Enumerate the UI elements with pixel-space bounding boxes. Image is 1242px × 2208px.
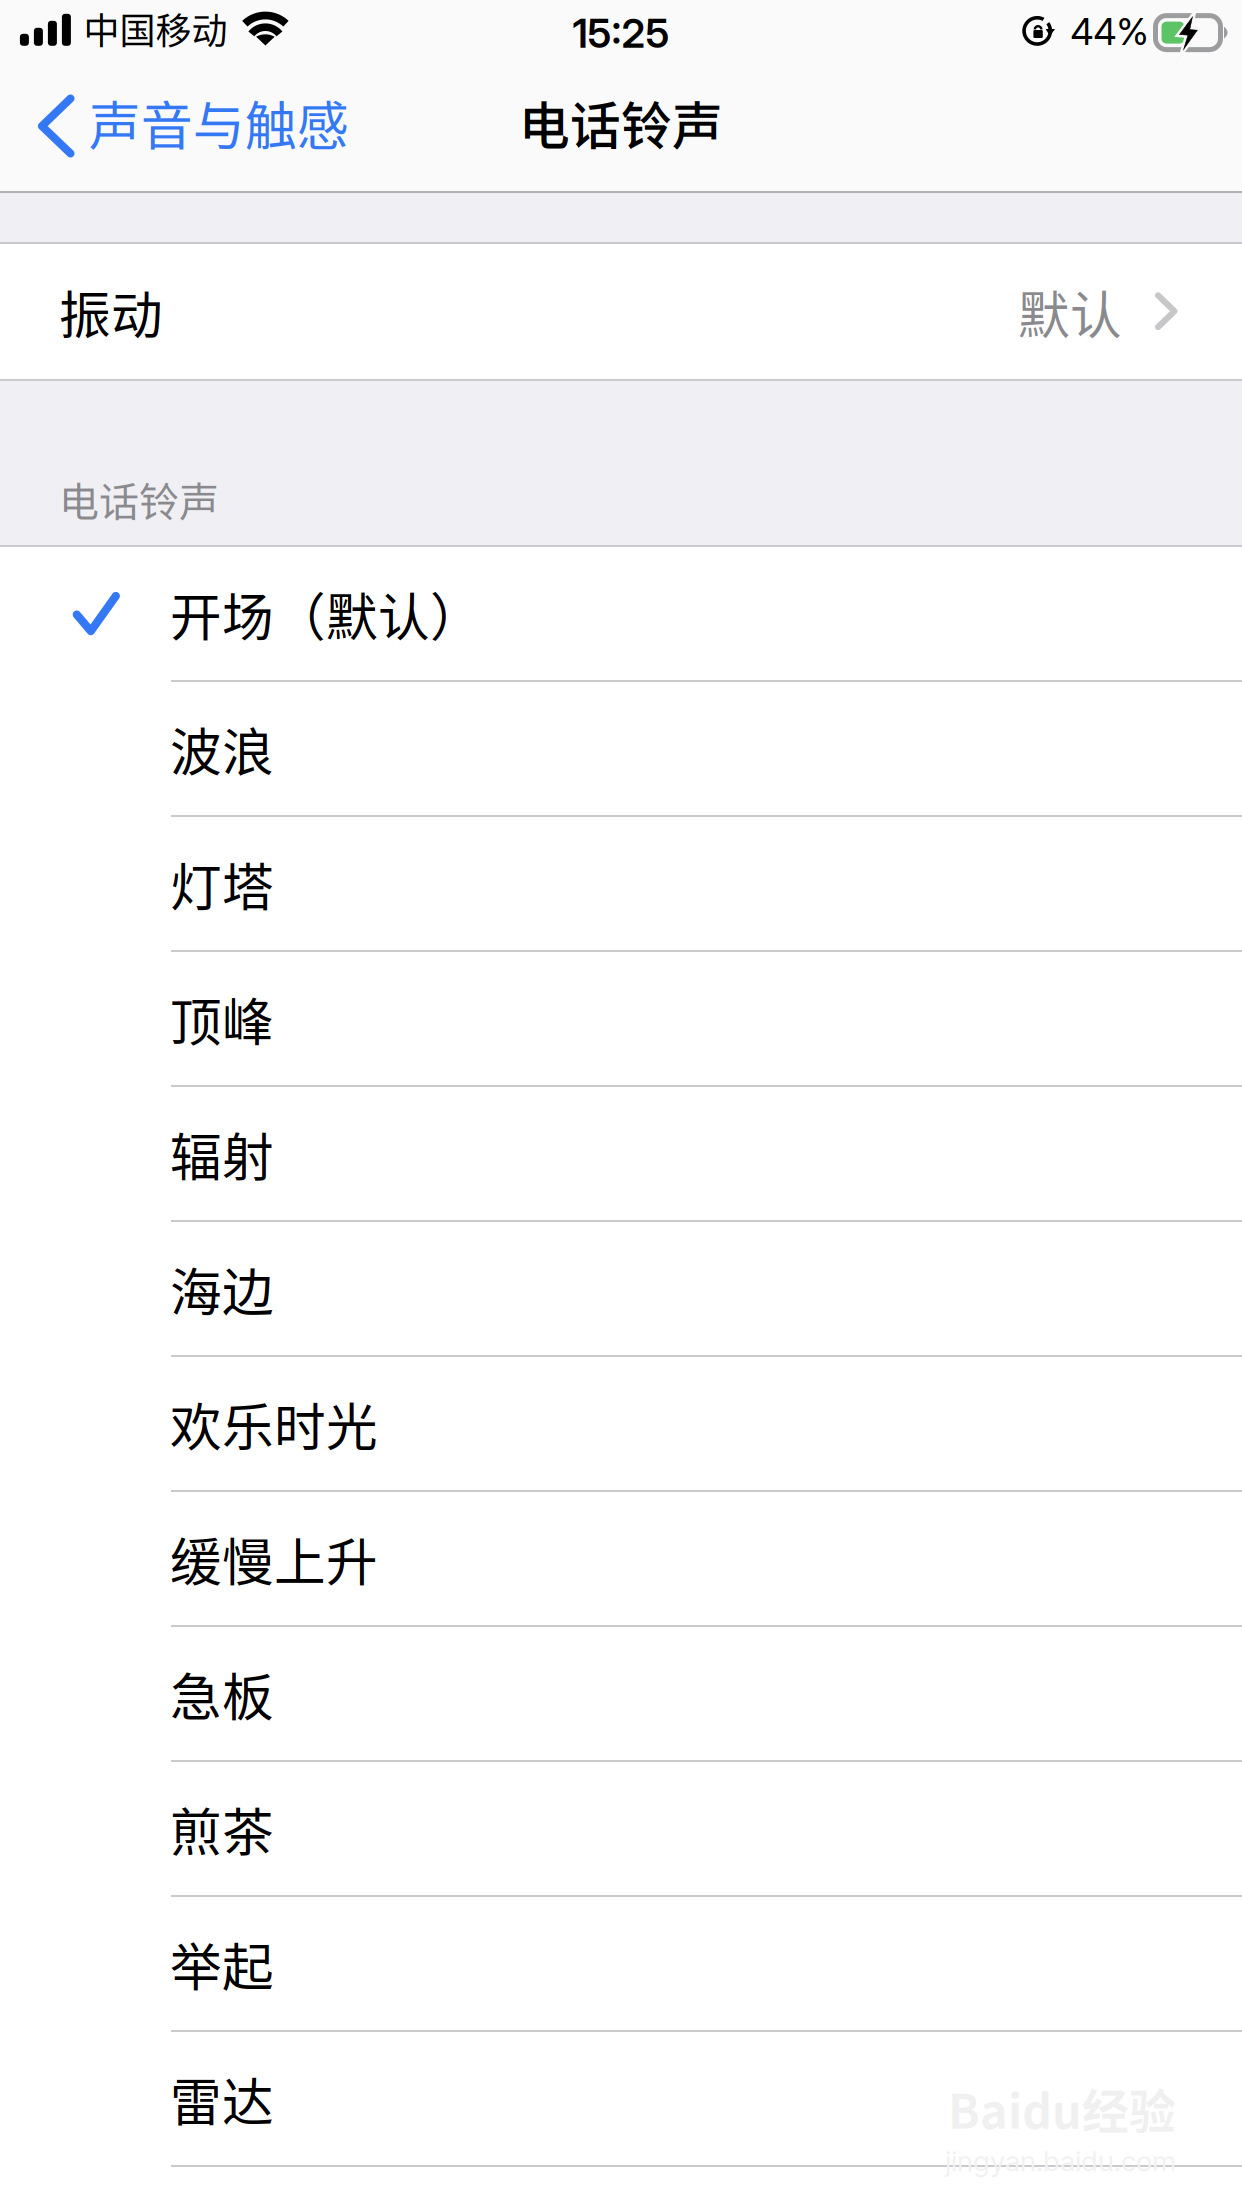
staticText: 雷达 [170, 2061, 274, 2136]
staticText: 急板 [170, 1656, 274, 1731]
staticText: 举起 [170, 1926, 274, 2001]
button[interactable]: 急板 [0, 1627, 1242, 1760]
button[interactable]: 振动 [0, 244, 1242, 379]
button[interactable]: 顶峰 [0, 952, 1242, 1085]
staticText: Baidu经验 [948, 2074, 1176, 2142]
button[interactable]: 声音与触感 [0, 72, 365, 191]
staticText: 海边 [170, 1251, 274, 1326]
staticText: jingyan.baidu.com [945, 2144, 1176, 2178]
button[interactable]: 辐射 [0, 1087, 1242, 1220]
button[interactable]: 举起 [0, 1897, 1242, 2030]
staticText: 振动 [59, 274, 163, 349]
staticText: 15:25 [572, 9, 669, 57]
staticText: 灯塔 [170, 846, 274, 921]
staticText: 电话铃声 [519, 86, 723, 159]
button[interactable]: 缓慢上升 [0, 1492, 1242, 1625]
staticText: 波浪 [170, 711, 274, 786]
staticText: 辐射 [170, 1116, 274, 1191]
button[interactable]: 灯塔 [0, 817, 1242, 950]
staticText: 煎茶 [170, 1791, 274, 1866]
button[interactable]: 欢乐时光 [0, 1357, 1242, 1490]
button[interactable]: 海边 [0, 1222, 1242, 1355]
staticText: 44% [1070, 9, 1148, 54]
staticText: 缓慢上升 [170, 1521, 378, 1596]
button[interactable]: 开场（默认） [0, 547, 1242, 680]
staticText: 中国移动 [83, 2, 227, 55]
staticText: 欢乐时光 [170, 1386, 378, 1461]
button[interactable]: 波浪 [0, 682, 1242, 815]
staticText: 默认 [1018, 274, 1122, 349]
button[interactable]: 煎茶 [0, 1762, 1242, 1895]
button[interactable]: 雷达 [0, 2032, 1242, 2165]
staticText: 顶峰 [170, 981, 274, 1056]
staticText: 开场（默认） [170, 576, 482, 651]
staticText: 声音与触感 [89, 85, 349, 160]
staticText: 电话铃声 [59, 470, 219, 528]
